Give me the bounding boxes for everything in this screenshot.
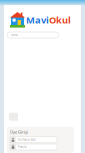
staticText: Parola xyxy=(18,145,26,149)
button[interactable]: arama... xyxy=(4,28,59,38)
staticText: Okul xyxy=(49,14,71,26)
staticText: Üye Girişi xyxy=(10,129,28,135)
button[interactable]: Parola xyxy=(10,144,57,150)
staticText: Mavi xyxy=(26,14,49,26)
staticText: Kullanıcı Adı xyxy=(18,138,36,141)
button[interactable]: Banner xyxy=(4,113,18,121)
button[interactable]: Mavi xyxy=(4,5,81,28)
staticText: arama... xyxy=(11,33,20,37)
button[interactable]: Kullanıcı Adı xyxy=(10,137,57,143)
